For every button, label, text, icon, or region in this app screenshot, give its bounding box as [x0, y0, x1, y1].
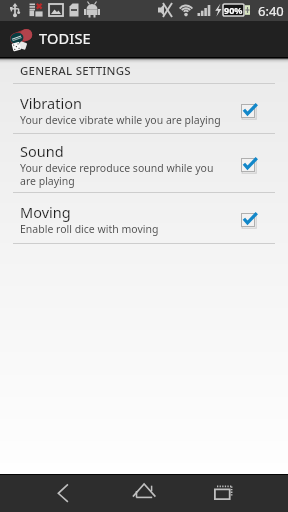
staticText: 90% — [224, 4, 243, 16]
staticText: Enable roll dice with moving — [20, 222, 159, 236]
staticText: Your device vibrate while you are playin… — [20, 113, 221, 127]
button[interactable]: Recent apps — [203, 475, 243, 512]
staticText: Your device reproduce sound while you ar… — [20, 161, 223, 188]
button[interactable]: Toggle setting — [241, 211, 260, 229]
button[interactable]: Vibration — [0, 84, 288, 133]
button[interactable]: Toggle setting — [241, 156, 260, 174]
staticText: Sound — [20, 141, 64, 161]
button[interactable]: Moving — [0, 193, 288, 243]
staticText: Moving — [20, 202, 71, 222]
staticText: GENERAL SETTINGS — [20, 63, 131, 79]
staticText: 6:40 — [258, 2, 284, 20]
button[interactable]: Sound — [0, 134, 288, 192]
button[interactable]: App icon — [8, 27, 34, 51]
button[interactable]: Home — [123, 475, 163, 512]
staticText: Vibration — [20, 93, 82, 113]
button[interactable]: Back — [43, 475, 83, 512]
staticText: TODISE — [39, 28, 91, 48]
button[interactable]: Toggle setting — [241, 102, 260, 120]
